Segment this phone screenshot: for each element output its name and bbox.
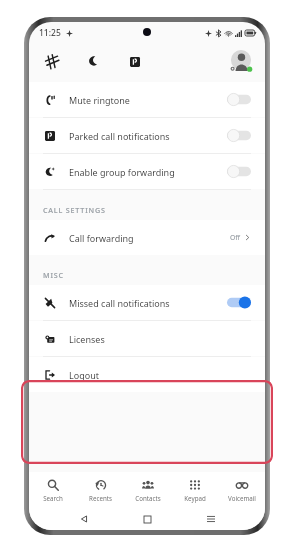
- staticText: Missed call notifications: [69, 297, 170, 309]
- button[interactable]: Back: [75, 510, 93, 528]
- button[interactable]: Search: [29, 472, 77, 508]
- staticText: Search: [43, 494, 63, 502]
- staticText: Logout: [69, 369, 99, 381]
- staticText: Contacts: [135, 494, 161, 502]
- staticText: Enable group forwarding: [69, 166, 175, 178]
- button[interactable]: Missed call notifications: [29, 285, 265, 320]
- staticText: Off: [230, 233, 240, 242]
- button[interactable]: Parked call notifications: [29, 118, 265, 153]
- button[interactable]: Licenses: [29, 321, 265, 356]
- button[interactable]: Night mode: [84, 52, 103, 71]
- staticText: Licenses: [69, 333, 105, 345]
- button[interactable]: Recent apps: [202, 510, 220, 528]
- button[interactable]: Account: [228, 48, 254, 74]
- button[interactable]: Logout: [29, 357, 265, 392]
- button[interactable]: Do not disturb schedule: [43, 52, 62, 71]
- staticText: Mute ringtone: [69, 94, 130, 106]
- button[interactable]: Mute ringtone: [29, 82, 265, 117]
- staticText: Call forwarding: [69, 232, 134, 244]
- staticText: 11:25: [39, 27, 61, 39]
- staticText: Recents: [89, 494, 112, 502]
- button[interactable]: Enable group forwarding: [29, 154, 265, 189]
- staticText: CALL SETTINGS: [43, 205, 106, 215]
- staticText: MISC: [43, 270, 64, 280]
- button[interactable]: Parked calls: [125, 52, 144, 71]
- button[interactable]: Keypad: [171, 472, 218, 508]
- staticText: Parked call notifications: [69, 130, 170, 142]
- button[interactable]: Recents: [77, 472, 124, 508]
- button[interactable]: Home: [138, 510, 156, 528]
- staticText: Keypad: [184, 494, 206, 502]
- button[interactable]: Voicemail: [218, 472, 265, 508]
- button[interactable]: Call forwarding: [29, 220, 265, 255]
- staticText: Voicemail: [228, 494, 256, 502]
- button[interactable]: Contacts: [124, 472, 171, 508]
